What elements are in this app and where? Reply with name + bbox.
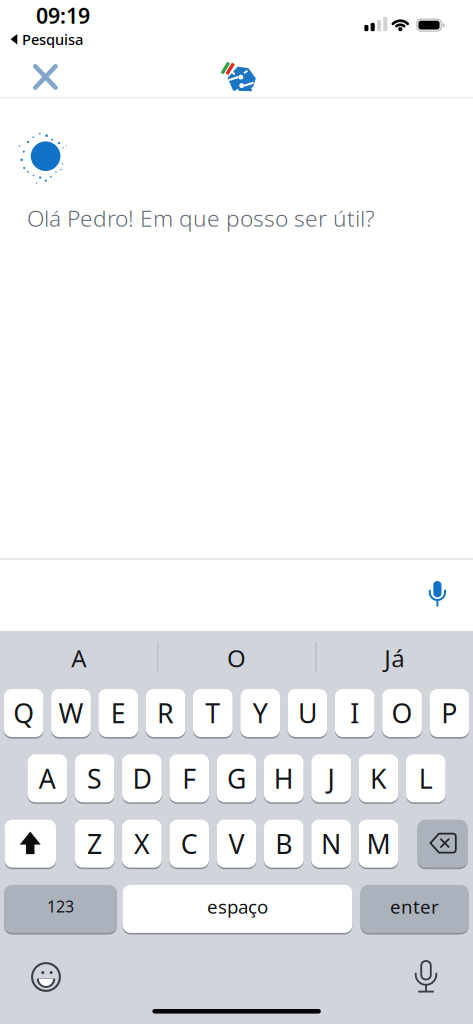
- button[interactable]: enter: [360, 885, 469, 933]
- button[interactable]: J: [311, 754, 351, 802]
- button[interactable]: A: [27, 754, 67, 802]
- staticText: X: [134, 826, 150, 861]
- button[interactable]: Shift: [4, 820, 56, 868]
- staticText: D: [132, 761, 151, 796]
- staticText: P: [441, 695, 457, 731]
- button[interactable]: Apagar: [417, 820, 467, 868]
- staticText: O: [392, 695, 413, 731]
- staticText: L: [419, 761, 433, 796]
- button[interactable]: Emoji: [23, 955, 67, 999]
- button[interactable]: Q: [4, 689, 43, 737]
- button[interactable]: S: [75, 754, 114, 802]
- staticText: H: [274, 761, 294, 796]
- staticText: J: [328, 761, 335, 796]
- button[interactable]: N: [311, 820, 351, 868]
- button[interactable]: Fechar: [23, 55, 67, 99]
- staticText: I: [350, 695, 359, 731]
- button[interactable]: C: [169, 820, 209, 868]
- staticText: V: [228, 826, 244, 861]
- button[interactable]: T: [193, 689, 233, 737]
- staticText: N: [321, 826, 341, 861]
- staticText: 123: [47, 896, 74, 917]
- staticText: R: [157, 695, 174, 731]
- button[interactable]: Ditar: [415, 570, 459, 614]
- staticText: espaço: [207, 894, 268, 919]
- staticText: U: [298, 695, 317, 731]
- staticText: Já: [384, 642, 404, 674]
- staticText: T: [205, 695, 220, 731]
- button[interactable]: Y: [240, 689, 280, 737]
- button[interactable]: R: [146, 689, 185, 737]
- staticText: Pesquisa: [22, 29, 83, 49]
- button[interactable]: D: [122, 754, 162, 802]
- staticText: Z: [87, 826, 102, 861]
- staticText: B: [275, 826, 292, 861]
- button[interactable]: L: [406, 754, 445, 802]
- button[interactable]: E: [98, 689, 138, 737]
- staticText: C: [181, 826, 198, 861]
- staticText: enter: [390, 894, 439, 919]
- button[interactable]: Z: [75, 820, 114, 868]
- button[interactable]: Pesquisa: [10, 29, 83, 49]
- button[interactable]: B: [264, 820, 304, 868]
- staticText: O: [227, 642, 246, 674]
- button[interactable]: H: [264, 754, 304, 802]
- staticText: Olá Pedro! Em que posso ser útil?: [27, 203, 375, 233]
- button[interactable]: Ditado: [404, 955, 448, 999]
- button[interactable]: U: [288, 689, 327, 737]
- staticText: M: [366, 826, 390, 861]
- staticText: F: [182, 761, 196, 796]
- button[interactable]: P: [429, 689, 469, 737]
- button[interactable]: I: [335, 689, 375, 737]
- staticText: A: [39, 761, 56, 796]
- button[interactable]: K: [358, 754, 398, 802]
- staticText: G: [227, 761, 246, 796]
- button[interactable]: F: [169, 754, 209, 802]
- button[interactable]: X: [122, 820, 162, 868]
- button[interactable]: G: [217, 754, 256, 802]
- staticText: Y: [253, 695, 268, 731]
- button[interactable]: espaço: [122, 885, 352, 933]
- staticText: Q: [13, 695, 34, 731]
- button[interactable]: M: [358, 820, 398, 868]
- button[interactable]: A: [4, 637, 154, 679]
- staticText: E: [111, 695, 126, 731]
- staticText: W: [58, 695, 83, 731]
- button[interactable]: 123: [4, 885, 117, 933]
- staticText: S: [87, 761, 102, 796]
- button[interactable]: V: [217, 820, 256, 868]
- button[interactable]: W: [51, 689, 91, 737]
- staticText: 09:19: [36, 1, 90, 30]
- button[interactable]: Já: [319, 637, 469, 679]
- button[interactable]: O: [161, 637, 311, 679]
- staticText: K: [370, 761, 387, 796]
- button[interactable]: O: [382, 689, 422, 737]
- staticText: A: [71, 642, 86, 674]
